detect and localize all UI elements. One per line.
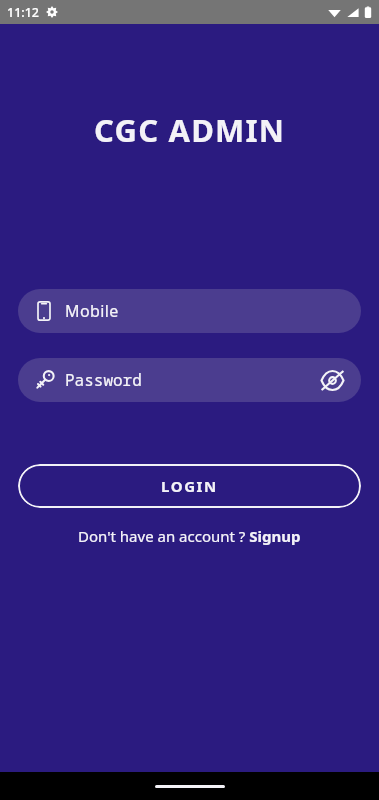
button[interactable]: Don't have an account ? Signup (74, 524, 305, 548)
button[interactable]: LOGIN (18, 464, 361, 508)
button[interactable]: Show password (317, 365, 347, 395)
staticText: LOGIN (161, 476, 218, 496)
staticText: CGC ADMIN (94, 109, 286, 151)
staticText: Password (65, 369, 142, 391)
button[interactable]: Password (18, 358, 361, 402)
staticText: 11:12 (7, 4, 40, 21)
button[interactable]: Mobile (18, 289, 361, 333)
staticText: Mobile (65, 300, 119, 322)
